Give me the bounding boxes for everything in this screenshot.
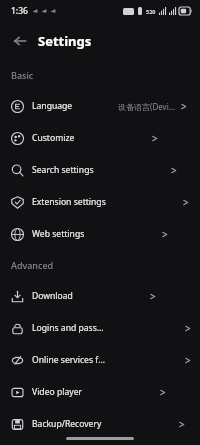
staticText: 520: [146, 8, 156, 15]
button[interactable]: Web settings: [0, 218, 200, 250]
staticText: Settings: [38, 32, 92, 50]
staticText: Web settings: [32, 228, 85, 240]
staticText: Advanced: [11, 259, 54, 271]
button[interactable]: Download: [0, 280, 200, 312]
staticText: Customize: [32, 132, 75, 144]
staticText: Search settings: [32, 164, 94, 176]
staticText: Basic: [11, 69, 34, 81]
staticText: Video player: [32, 386, 83, 398]
staticText: Language: [32, 100, 73, 112]
staticText: Backup/Recovery: [32, 418, 102, 430]
button[interactable]: Online services for desktop browsers: [0, 344, 200, 376]
button[interactable]: Backup/Recovery: [0, 408, 200, 440]
staticText: Online services for desktop browsers: [32, 354, 108, 366]
staticText: Download: [32, 290, 73, 302]
staticText: 1:36: [11, 5, 28, 17]
button[interactable]: Search settings: [0, 154, 200, 186]
button[interactable]: Video player: [0, 376, 200, 408]
staticText: 设备语言(Devi...: [118, 101, 176, 112]
button[interactable]: Logins and passwords: [0, 312, 200, 344]
staticText: Logins and passwords: [32, 322, 108, 334]
button[interactable]: Customize: [0, 122, 200, 154]
staticText: Extension settings: [32, 196, 106, 208]
button[interactable]: Language: [0, 90, 200, 122]
button[interactable]: Back: [6, 27, 34, 55]
button[interactable]: Extension settings: [0, 186, 200, 218]
